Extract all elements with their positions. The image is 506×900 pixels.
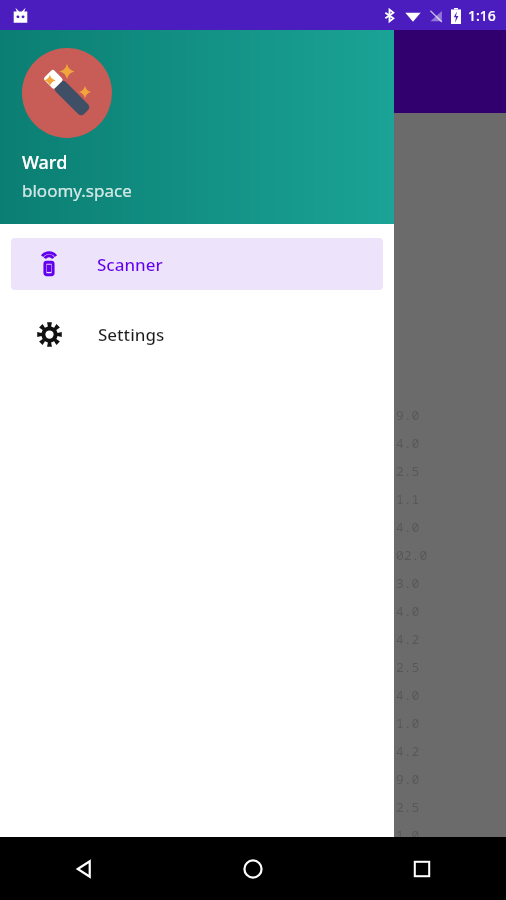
- button[interactable]: Home: [168, 837, 337, 900]
- staticText: bloomy.space: [22, 179, 132, 202]
- button[interactable]: Recent apps: [337, 837, 506, 900]
- staticText: 1:16: [468, 6, 496, 25]
- staticText: Ward: [22, 150, 68, 175]
- staticText: Settings: [98, 323, 165, 346]
- button[interactable]: Settings: [0, 308, 394, 360]
- button[interactable]: Scanner: [11, 238, 383, 290]
- staticText: Scanner: [97, 253, 163, 276]
- button[interactable]: Back: [0, 837, 168, 900]
